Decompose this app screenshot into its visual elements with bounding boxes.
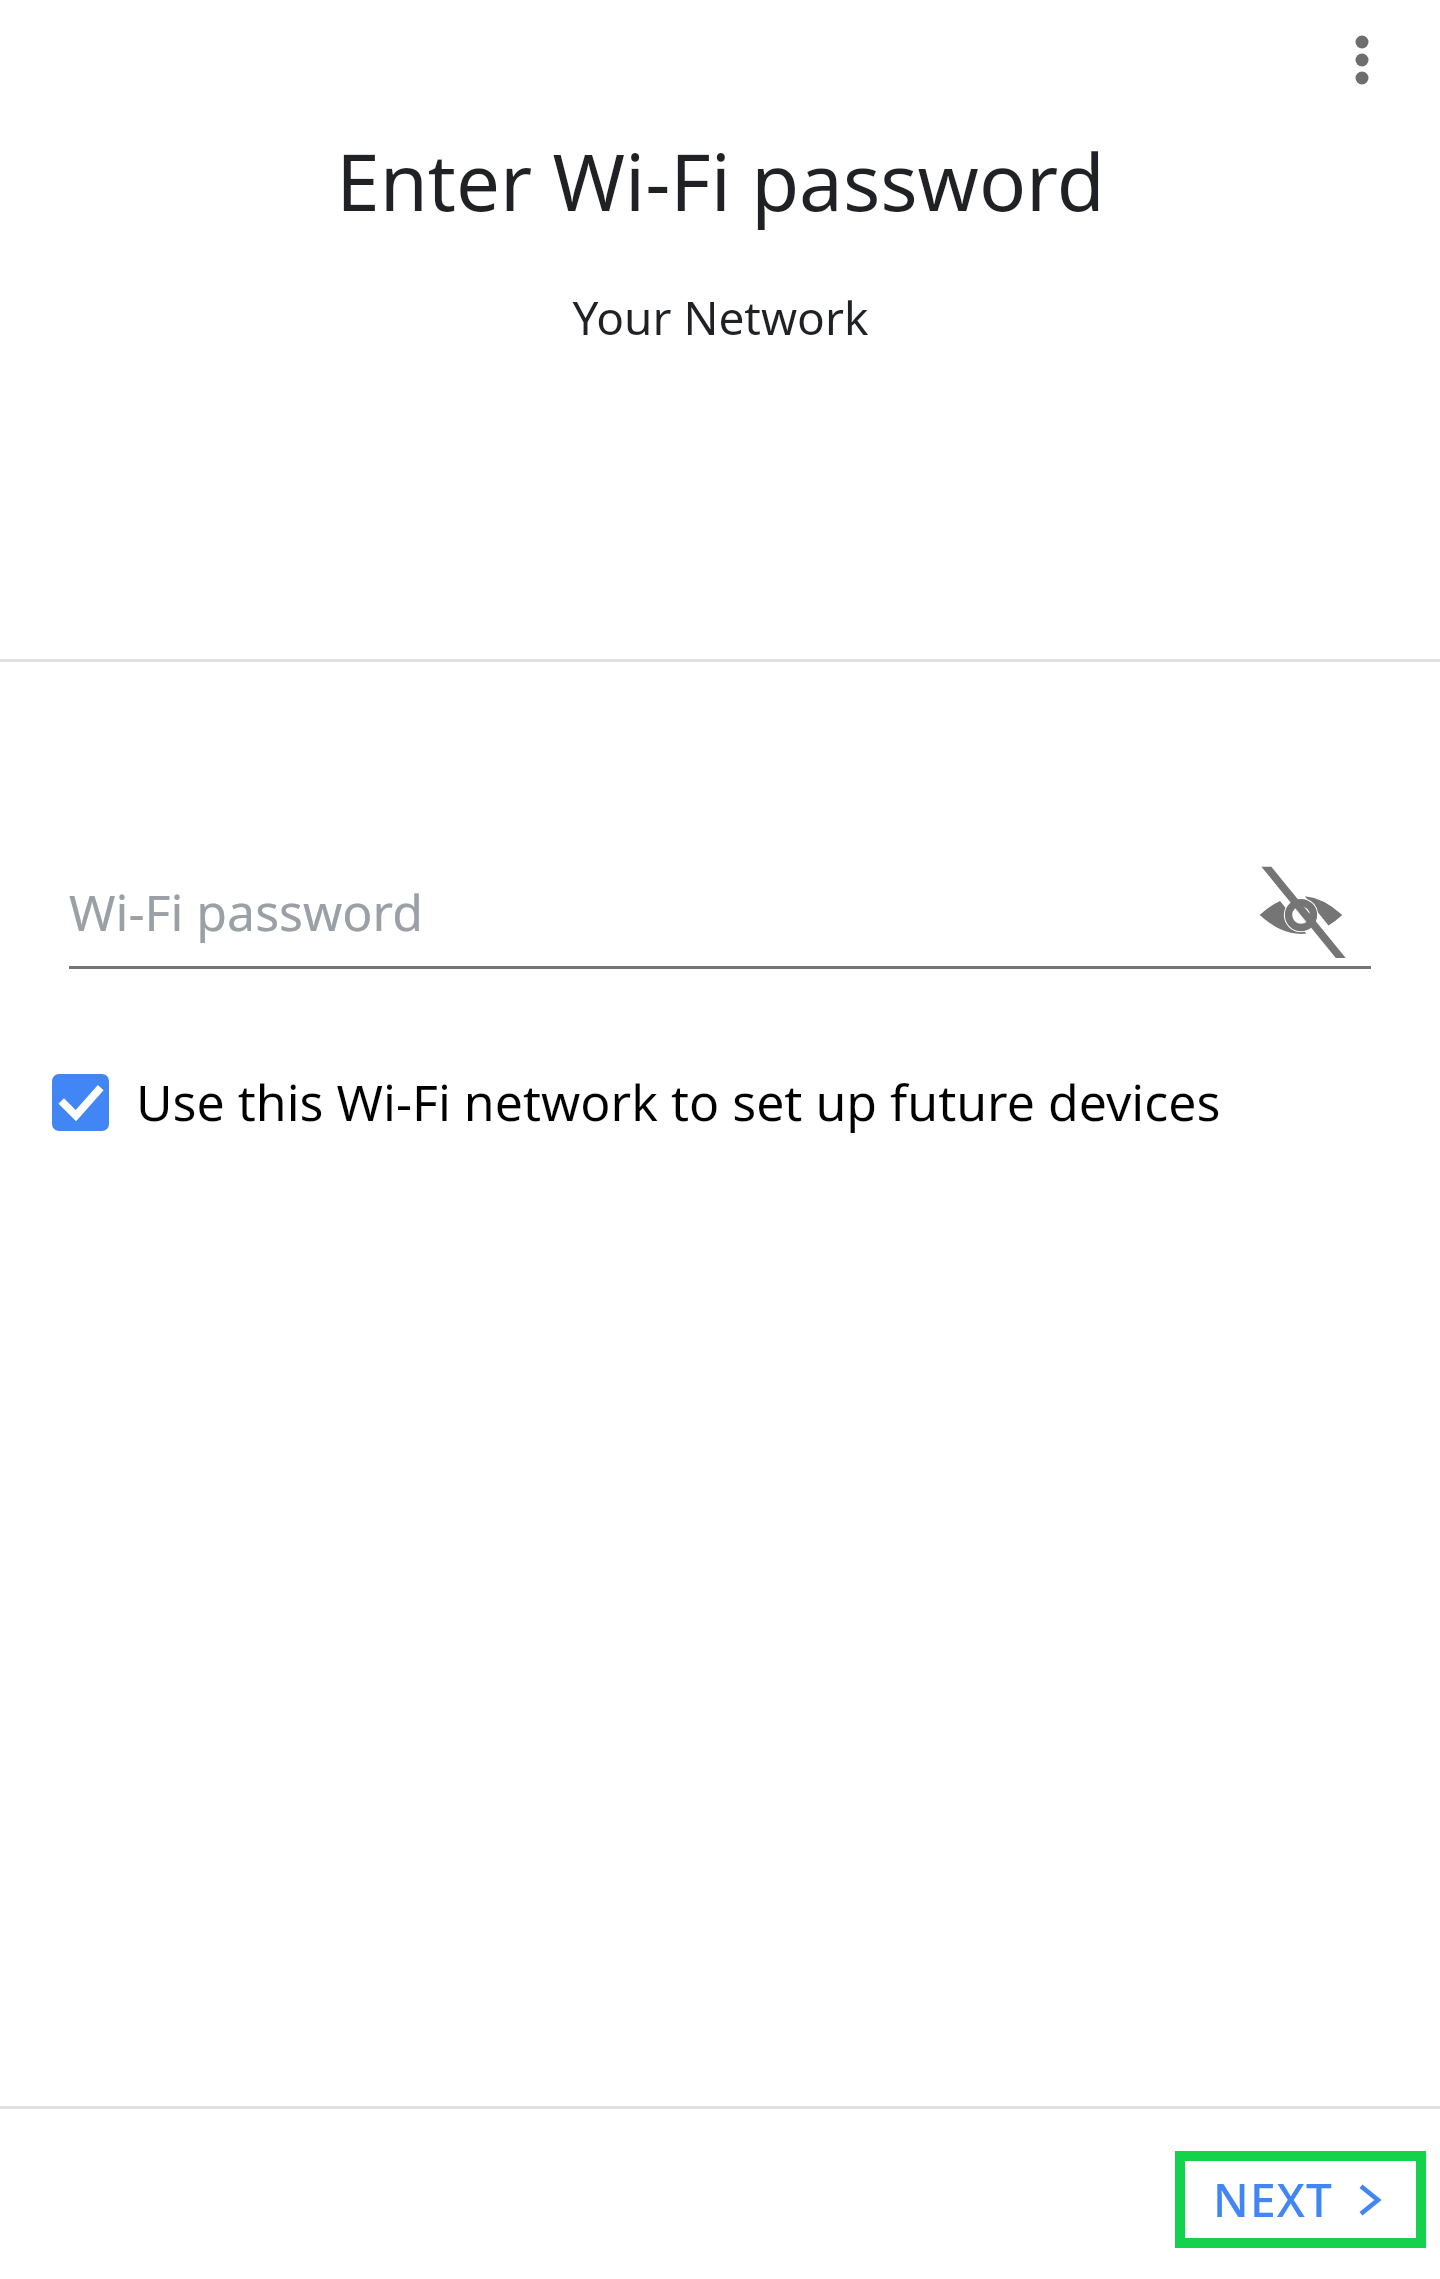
staticText: Your Network [572, 286, 869, 349]
staticText: Use this Wi-Fi network to set up future … [136, 1068, 1221, 1136]
button[interactable]: Show password [1246, 860, 1356, 970]
staticText: Wi-Fi password [69, 878, 423, 946]
staticText: Enter Wi-Fi password [336, 128, 1105, 234]
button[interactable]: NEXT [1185, 2161, 1416, 2238]
staticText: NEXT [1213, 2168, 1334, 2231]
button[interactable]: Use this Wi-Fi network to set up future … [52, 1045, 1382, 1159]
button[interactable]: Wi-Fi password [69, 855, 1371, 969]
button[interactable]: More options [1314, 0, 1410, 120]
